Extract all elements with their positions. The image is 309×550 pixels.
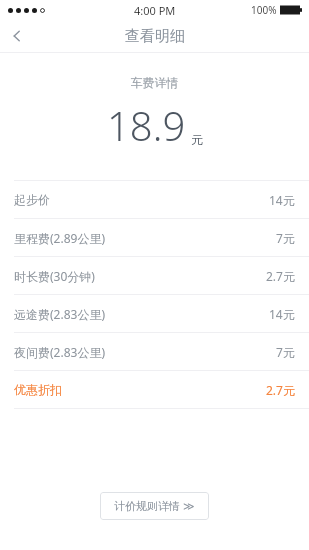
staticText: 100% [251,3,277,17]
staticText: 4:00 PM [134,3,176,18]
button[interactable]: 起步价 [0,181,309,218]
staticText: 起步价 [14,192,50,207]
staticText: 14元 [269,306,295,322]
staticText: ≫ [183,500,195,513]
staticText: 车费详情 [0,75,309,90]
button[interactable]: 远途费(2.83公里) [0,295,309,332]
button[interactable]: 夜间费(2.83公里) [0,333,309,370]
staticText: 里程费(2.89公里) [14,230,106,246]
button[interactable]: 优惠折扣 [0,371,309,408]
staticText: 优惠折扣 [14,382,62,397]
staticText: 远途费(2.83公里) [14,306,106,322]
staticText: 夜间费(2.83公里) [14,344,106,360]
staticText: 计价规则详情 [114,499,180,513]
button[interactable]: 时长费(30分钟) [0,257,309,294]
staticText: 7元 [276,344,295,360]
staticText: 2.7元 [266,382,295,398]
staticText: 18.9 [107,98,186,152]
staticText: 元 [191,132,203,147]
staticText: 14元 [269,192,295,208]
button[interactable]: 里程费(2.89公里) [0,219,309,256]
staticText: 时长费(30分钟) [14,268,95,284]
button[interactable]: 计价规则详情 [100,492,209,520]
staticText: 7元 [276,230,295,246]
staticText: 查看明细 [125,27,185,46]
button[interactable]: Back [0,20,34,52]
staticText: 2.7元 [266,268,295,284]
